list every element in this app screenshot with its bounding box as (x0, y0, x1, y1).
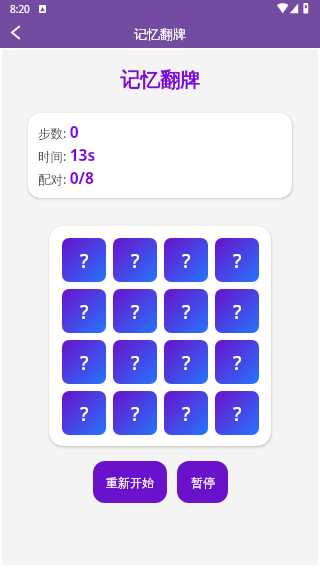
staticText: 暂停 (191, 475, 215, 490)
button[interactable]: Flip card (215, 340, 259, 384)
staticText: ? (182, 401, 191, 427)
staticText: ? (80, 299, 89, 325)
button[interactable]: Flip card (164, 238, 208, 282)
button[interactable]: Flip card (113, 289, 157, 333)
staticText: 步数: 0 (38, 121, 79, 142)
button[interactable]: 暂停 (177, 461, 228, 503)
staticText: 8:20 (10, 2, 30, 16)
staticText: ? (80, 350, 89, 376)
staticText: ? (182, 299, 191, 325)
staticText: ? (131, 350, 140, 376)
button[interactable]: Flip card (215, 391, 259, 435)
button[interactable]: Flip card (113, 391, 157, 435)
button[interactable]: Flip card (164, 340, 208, 384)
staticText: ? (233, 401, 242, 427)
button[interactable]: Flip card (164, 289, 208, 333)
button[interactable]: Flip card (62, 238, 106, 282)
button[interactable]: Flip card (62, 289, 106, 333)
button[interactable]: Flip card (62, 391, 106, 435)
staticText: ? (131, 248, 140, 274)
button[interactable]: Flip card (62, 340, 106, 384)
button[interactable]: 重新开始 (93, 461, 167, 503)
staticText: 配对: 0/8 (38, 167, 94, 188)
button[interactable]: Flip card (113, 238, 157, 282)
staticText: 时间: 13s (38, 144, 96, 165)
staticText: 记忆翻牌 (120, 68, 200, 93)
staticText: 记忆翻牌 (134, 26, 186, 42)
staticText: ? (182, 248, 191, 274)
button[interactable]: Flip card (215, 289, 259, 333)
staticText: 重新开始 (106, 475, 154, 490)
staticText: ? (233, 248, 242, 274)
staticText: ? (80, 248, 89, 274)
staticText: ? (80, 401, 89, 427)
staticText: ? (233, 350, 242, 376)
staticText: ? (182, 350, 191, 376)
staticText: ? (233, 299, 242, 325)
staticText: ? (131, 401, 140, 427)
button[interactable]: Flip card (113, 340, 157, 384)
button[interactable]: Back (0, 17, 31, 48)
button[interactable]: Flip card (215, 238, 259, 282)
staticText: ? (131, 299, 140, 325)
button[interactable]: Flip card (164, 391, 208, 435)
